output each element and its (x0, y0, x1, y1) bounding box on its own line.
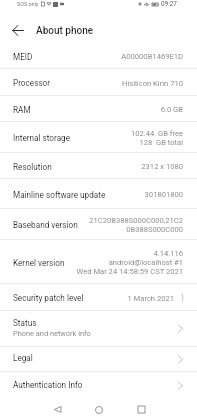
button[interactable]: Back (6, 17, 30, 41)
staticText: 21C20B388S000C000,21C20B388S000C000 (86, 216, 183, 234)
button[interactable]: Security patch level (0, 284, 197, 311)
staticText: A00000B1469E1D (93, 52, 183, 61)
staticText: About phone (36, 25, 94, 37)
staticText: Phone and network info (13, 329, 91, 338)
staticText: Authentication Info (13, 380, 83, 390)
staticText: Processor (13, 78, 51, 88)
staticText: 6.0 GB (93, 105, 183, 114)
staticText: 1 March 2021 (84, 294, 174, 303)
staticText: Status (13, 318, 37, 328)
staticText: 09:27 (161, 0, 177, 8)
button[interactable]: Status (0, 311, 197, 347)
staticText: Baseband version (13, 220, 78, 230)
staticText: Mainline software update (13, 190, 106, 200)
staticText: 2312 x 1080 (93, 162, 183, 171)
staticText: Hisilicon Kirin 710 (93, 79, 183, 88)
button[interactable]: Processor (0, 69, 197, 96)
staticText: Kernel version (13, 258, 65, 268)
staticText: SOS only (17, 1, 39, 7)
button[interactable]: Home (88, 399, 110, 420)
button[interactable]: MEID (0, 43, 197, 69)
staticText: Resolution (13, 162, 52, 172)
staticText: RAM (13, 105, 31, 115)
button[interactable]: Authentication Info (0, 372, 197, 399)
button[interactable]: Kernel version (0, 240, 197, 284)
button[interactable]: Internal storage (0, 122, 197, 153)
button[interactable]: Baseband version (0, 209, 197, 240)
staticText: 102.44 GB free 128 GB total (93, 129, 183, 147)
staticText: Legal (13, 353, 33, 363)
staticText: MEID (13, 52, 33, 62)
button[interactable]: RAM (0, 96, 197, 122)
staticText: 4.14.116 android@localhost #1 Wed Mar 24… (73, 249, 183, 276)
button[interactable]: Resolution (0, 153, 197, 179)
button[interactable]: Mainline software update (0, 179, 197, 209)
staticText: 301801800 (106, 190, 183, 199)
button[interactable]: Legal (0, 347, 197, 372)
button[interactable]: Back (46, 399, 68, 420)
staticText: Security patch level (13, 293, 84, 303)
button[interactable]: Recents (130, 399, 152, 420)
staticText: Internal storage (13, 133, 71, 143)
